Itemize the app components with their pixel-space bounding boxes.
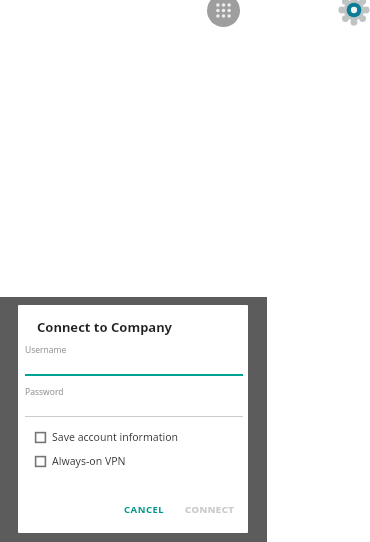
staticText: Save account information bbox=[52, 430, 179, 444]
staticText: Username bbox=[25, 344, 67, 356]
staticText: CONNECT bbox=[185, 503, 235, 516]
button[interactable]: Settings bbox=[339, 0, 369, 25]
staticText: CANCEL bbox=[124, 503, 165, 516]
button[interactable]: CANCEL bbox=[116, 499, 173, 520]
button[interactable]: CONNECT bbox=[177, 499, 243, 520]
button[interactable]: Save account information bbox=[18, 430, 248, 444]
button[interactable]: Always-on VPN bbox=[18, 454, 248, 468]
staticText: Connect to Company bbox=[37, 318, 173, 336]
staticText: Always-on VPN bbox=[52, 454, 126, 468]
button[interactable]: Apps bbox=[207, 0, 240, 27]
staticText: Password bbox=[25, 386, 64, 398]
